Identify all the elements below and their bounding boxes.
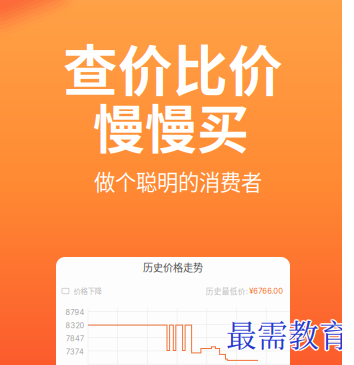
staticText: 7374: [66, 347, 84, 356]
staticText: 最需教育: [226, 313, 350, 357]
staticText: 价格下降: [73, 286, 101, 296]
staticText: 7847: [66, 334, 84, 343]
staticText: 最需教育: [225, 312, 349, 357]
staticText: 8320: [65, 321, 84, 330]
staticText: 8794: [65, 308, 84, 317]
staticText: 最需教育: [227, 310, 351, 355]
staticText: 最需教育: [227, 312, 351, 357]
staticText: 最需教育: [225, 311, 349, 356]
staticText: 历史价格走势: [143, 260, 203, 274]
staticText: ¥6766.00: [249, 286, 283, 296]
staticText: 历史最低价:: [206, 285, 248, 296]
staticText: 最需教育: [226, 310, 350, 354]
staticText: 慢慢买: [93, 88, 249, 164]
staticText: 最需教育: [226, 311, 350, 356]
staticText: 做个聪明的消费者: [94, 166, 262, 196]
staticText: 最需教育: [227, 311, 351, 356]
staticText: 查价比价: [63, 27, 283, 107]
staticText: 最需教育: [225, 310, 349, 355]
